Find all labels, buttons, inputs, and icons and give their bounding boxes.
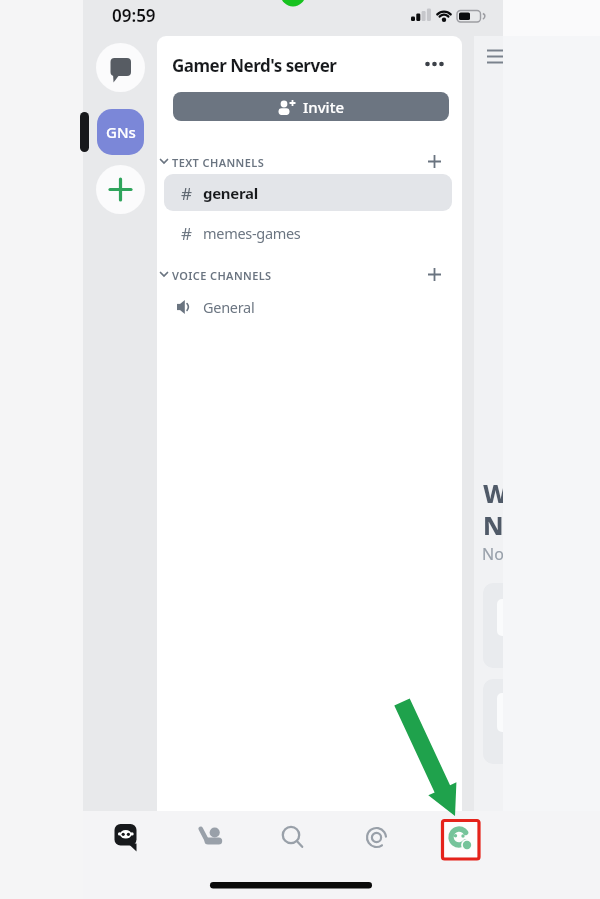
staticText: general [203, 183, 258, 203]
button[interactable]: VOICE CHANNELS [157, 264, 453, 286]
button[interactable] [96, 165, 145, 214]
staticText: # [181, 182, 192, 205]
staticText: 09:59 [112, 4, 156, 27]
button[interactable] [421, 56, 447, 72]
staticText: memes-games [203, 223, 301, 243]
staticText: TEXT CHANNELS [172, 155, 265, 170]
staticText: General [203, 297, 255, 317]
button[interactable]: Invite [173, 92, 449, 121]
staticText: Gamer Nerd's server [172, 54, 337, 77]
staticText: Invite [303, 97, 345, 117]
staticText: GNs [106, 122, 136, 142]
staticText: # [181, 222, 192, 245]
staticText: We [483, 476, 503, 510]
button[interactable] [187, 814, 233, 860]
button[interactable] [353, 814, 399, 860]
button[interactable]: # [164, 216, 452, 249]
button[interactable] [266, 814, 312, 860]
button[interactable]: GNs [97, 109, 144, 155]
button[interactable]: General [164, 290, 452, 323]
button[interactable] [104, 814, 150, 860]
button[interactable]: # [164, 174, 452, 211]
button[interactable] [96, 43, 145, 92]
staticText: No [482, 543, 503, 565]
button[interactable]: TEXT CHANNELS [157, 151, 453, 173]
staticText: Ne [483, 508, 503, 542]
button[interactable] [438, 816, 484, 862]
staticText: VOICE CHANNELS [172, 268, 272, 283]
